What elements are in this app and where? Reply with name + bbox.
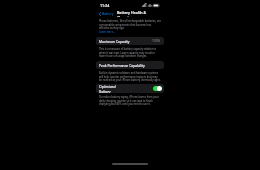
button[interactable]: Peak Performance Capability [96, 61, 164, 69]
button[interactable]: Optimized Battery Charging [96, 84, 164, 93]
staticText: 11:34 [100, 3, 110, 8]
staticText: Phone batteries, like all rechargeable b… [99, 19, 161, 29]
button[interactable]: Back to Battery [98, 11, 115, 16]
staticText: Optimized Battery Charging [99, 84, 126, 93]
staticText: Peak Performance Capability [99, 63, 145, 68]
staticText: Battery Health & Charging [117, 10, 162, 17]
staticText: This is a measure of battery capacity re… [99, 47, 161, 57]
button[interactable]: Maximum Capacity [96, 37, 164, 45]
staticText: To reduce battery aging, iPhone learns f… [99, 95, 161, 105]
staticText: 100% [152, 39, 161, 43]
staticText: Maximum Capacity [99, 39, 130, 44]
staticText: Battery [102, 11, 114, 16]
button[interactable]: Optimized Battery Charging toggle, on [153, 86, 162, 91]
staticText: Built-in dynamic software and hardware s… [99, 71, 161, 81]
button[interactable]: Learn more... [99, 30, 116, 34]
